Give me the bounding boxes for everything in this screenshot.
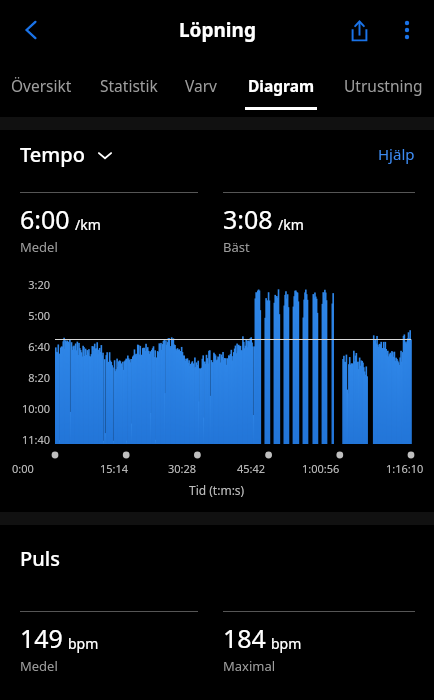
- staticText: Puls: [20, 545, 60, 572]
- staticText: 6:40: [10, 339, 50, 354]
- staticText: 11:40: [10, 432, 50, 447]
- staticText: Löpning: [179, 17, 256, 43]
- staticText: 184: [223, 621, 266, 655]
- button[interactable]: Statistik: [100, 60, 158, 117]
- staticText: 5:00: [10, 308, 50, 323]
- staticText: 1:00:56: [302, 461, 340, 476]
- staticText: 1:16:10: [386, 461, 424, 476]
- button[interactable]: Tempo: [20, 141, 113, 168]
- staticText: 30:28: [168, 461, 197, 476]
- staticText: Varv: [185, 75, 217, 96]
- staticText: Översikt: [11, 75, 72, 96]
- button[interactable]: Varv: [185, 60, 217, 117]
- staticText: Diagram: [248, 75, 315, 96]
- staticText: Maximal: [223, 657, 276, 675]
- staticText: /km: [278, 215, 304, 234]
- staticText: 0:00: [12, 461, 34, 476]
- button[interactable]: Share: [334, 5, 384, 55]
- staticText: /km: [75, 215, 101, 234]
- button[interactable]: Diagram: [245, 60, 317, 117]
- staticText: 8:20: [10, 370, 50, 385]
- staticText: 3:20: [10, 277, 50, 292]
- staticText: bpm: [271, 634, 302, 653]
- staticText: Statistik: [100, 75, 158, 96]
- staticText: bpm: [68, 634, 99, 653]
- button[interactable]: Back: [8, 7, 54, 53]
- button[interactable]: Översikt: [11, 60, 72, 117]
- staticText: 3:08: [223, 202, 273, 236]
- staticText: Tempo: [20, 141, 85, 168]
- staticText: Bäst: [223, 238, 250, 256]
- staticText: 149: [20, 621, 63, 655]
- staticText: 6:00: [20, 202, 70, 236]
- staticText: 10:00: [10, 401, 50, 416]
- staticText: Utrustning: [344, 75, 423, 96]
- staticText: 45:42: [237, 461, 266, 476]
- button[interactable]: Utrustning: [344, 60, 423, 117]
- staticText: Hjälp: [378, 144, 415, 164]
- staticText: Medel: [20, 238, 58, 256]
- staticText: Tid (t:m:s): [189, 482, 245, 498]
- button[interactable]: Hjälp: [378, 144, 415, 164]
- staticText: 15:14: [100, 461, 129, 476]
- staticText: Medel: [20, 657, 58, 675]
- button[interactable]: More options: [384, 7, 430, 53]
